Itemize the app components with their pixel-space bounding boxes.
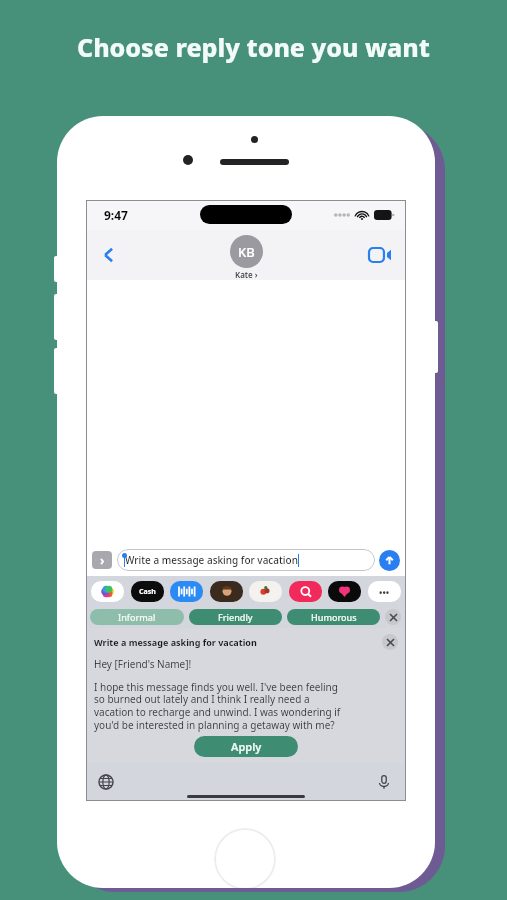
button[interactable]: App <box>328 581 361 602</box>
staticText: 9:47 <box>104 207 128 223</box>
staticText: Friendly <box>218 611 253 623</box>
button[interactable]: App <box>368 581 401 602</box>
staticText: Hey [Friend's Name]! <box>94 657 192 671</box>
staticText: ••• <box>379 586 390 598</box>
button[interactable]: App <box>131 581 164 602</box>
staticText: KB <box>238 243 255 261</box>
button[interactable]: Switch keyboard language <box>94 770 118 794</box>
button[interactable]: FaceTime video call <box>364 239 396 271</box>
staticText: › <box>100 552 105 568</box>
button[interactable]: App <box>289 581 322 602</box>
button[interactable]: Informal <box>90 609 184 625</box>
staticText: Kate › <box>235 269 258 280</box>
staticText: Informal <box>118 611 156 623</box>
staticText: Write a message asking for vacation <box>125 553 298 567</box>
button[interactable]: Send <box>379 550 400 571</box>
button[interactable]: Back <box>94 240 124 270</box>
button[interactable]: App <box>170 581 203 602</box>
button[interactable]: Close <box>385 609 401 625</box>
button[interactable]: App <box>249 581 282 602</box>
button[interactable]: App <box>91 581 124 602</box>
button[interactable]: App <box>210 581 243 602</box>
button[interactable]: Humorous <box>287 609 380 625</box>
staticText: Write a message asking for vacation <box>94 636 382 648</box>
staticText: Choose reply tone you want <box>77 30 430 64</box>
staticText: I hope this message finds you well. I've… <box>94 680 341 732</box>
button[interactable]: Write a message asking for vacation <box>117 549 375 571</box>
button[interactable]: Friendly <box>189 609 282 625</box>
staticText: Apply <box>231 739 262 754</box>
button[interactable]: Dictate <box>372 770 396 794</box>
button[interactable]: Apply <box>194 736 298 757</box>
button[interactable]: Expand apps <box>92 551 112 569</box>
button[interactable]: KB <box>230 235 263 280</box>
staticText: Humorous <box>311 611 357 623</box>
staticText: Cash <box>139 587 156 597</box>
button[interactable]: Close <box>382 634 398 650</box>
